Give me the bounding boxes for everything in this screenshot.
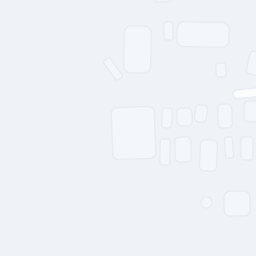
button[interactable]: Item 1 — [162, 108, 172, 128]
button[interactable]: Item 10 — [241, 137, 253, 160]
button[interactable]: Corner tile — [248, 52, 256, 75]
button[interactable]: Angled bar — [109, 57, 117, 81]
button[interactable]: Action tile — [224, 191, 250, 216]
button[interactable]: Slider — [233, 88, 256, 97]
button[interactable]: Item 7 — [175, 137, 191, 162]
button[interactable]: Chip — [216, 63, 226, 77]
button[interactable]: Small bar — [164, 22, 173, 40]
button[interactable]: Item 2 — [177, 108, 192, 126]
button[interactable]: Item 5 — [244, 101, 256, 122]
button[interactable]: Item 9 — [225, 137, 233, 158]
button[interactable]: Clipped tile — [153, 0, 172, 2]
button[interactable]: Item 4 — [218, 104, 232, 128]
button[interactable]: Status dot — [201, 197, 212, 208]
button[interactable]: Item 6 — [160, 139, 170, 165]
button[interactable]: Item 3 — [195, 105, 207, 122]
button[interactable]: Item 8 — [200, 140, 217, 171]
